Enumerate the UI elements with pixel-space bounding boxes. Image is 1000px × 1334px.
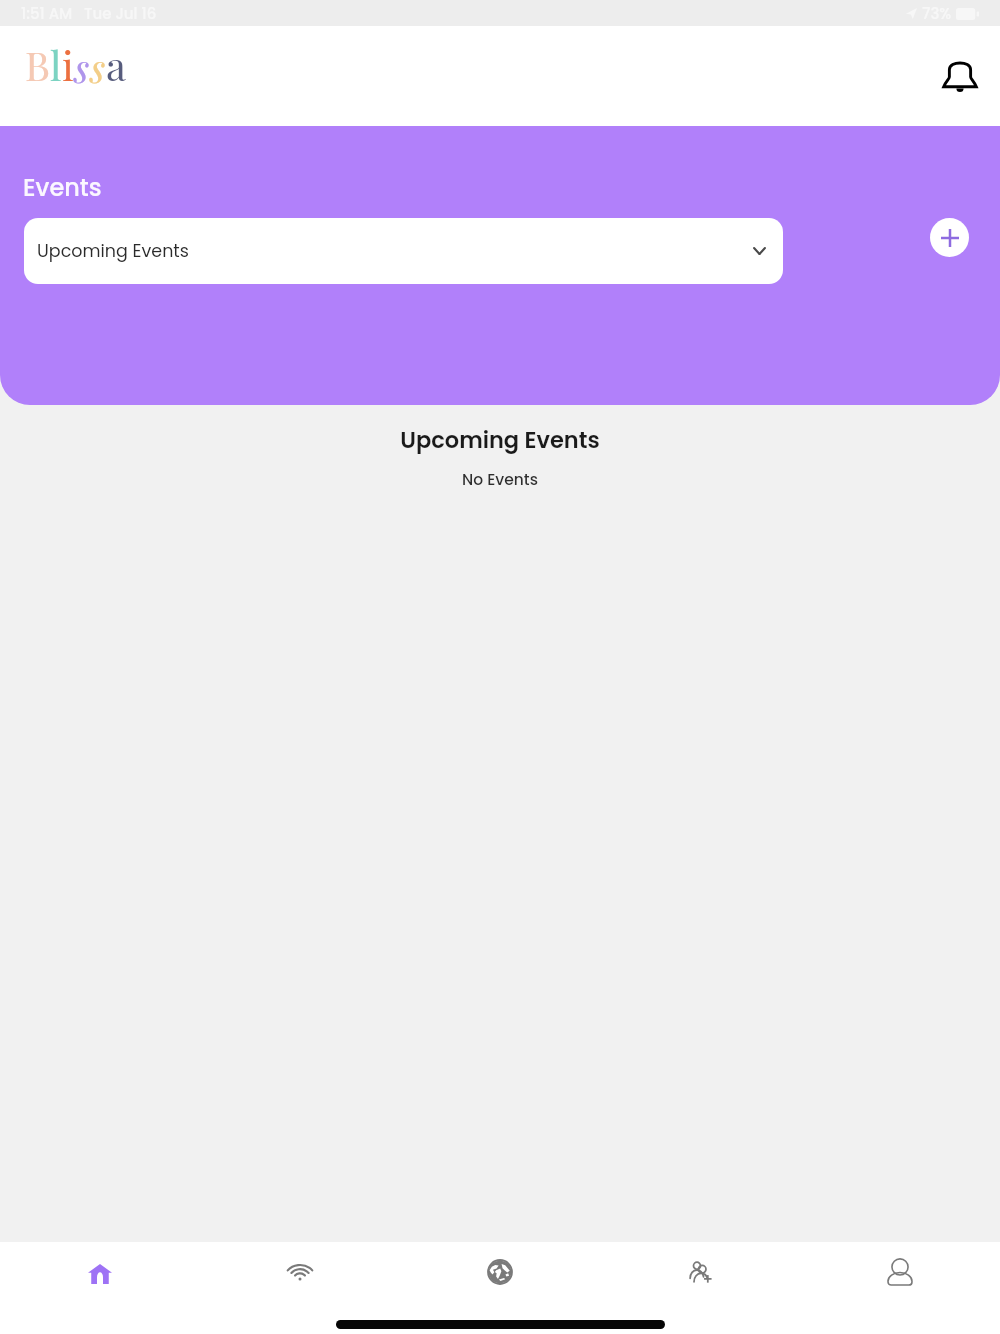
staticText: B xyxy=(25,38,50,91)
staticText: No Events xyxy=(0,469,1000,491)
staticText: Events xyxy=(23,171,102,205)
button[interactable]: Upcoming Events xyxy=(24,218,783,284)
button[interactable]: Invite friends xyxy=(600,1242,800,1302)
staticText: l xyxy=(50,38,62,91)
staticText: i xyxy=(62,38,74,91)
staticText: Upcoming Events xyxy=(0,424,1000,455)
staticText: s xyxy=(90,40,106,93)
button[interactable]: Notifications xyxy=(936,52,984,100)
staticText: 73% xyxy=(922,3,952,24)
button[interactable]: Explore xyxy=(400,1242,600,1302)
button[interactable]: Feed xyxy=(200,1242,400,1302)
staticText: 1:51 AM Tue Jul 16 xyxy=(21,3,157,24)
button[interactable]: Home xyxy=(0,1242,200,1302)
staticText: Upcoming Events xyxy=(37,239,189,264)
button[interactable]: Profile xyxy=(800,1242,1000,1302)
staticText: a xyxy=(106,38,126,91)
button[interactable]: Add event xyxy=(930,218,969,257)
staticText: s xyxy=(74,40,90,93)
